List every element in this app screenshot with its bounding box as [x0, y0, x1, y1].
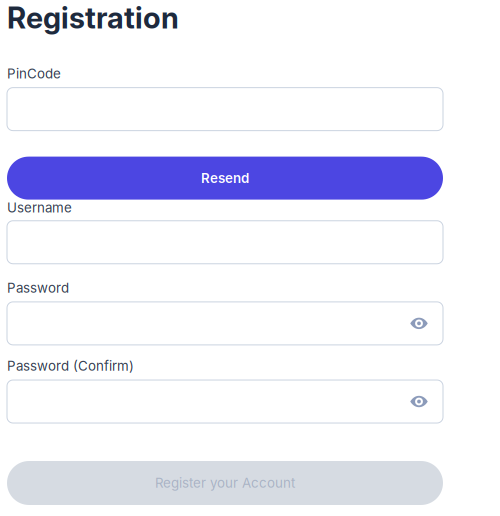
staticText: Username — [7, 200, 72, 216]
button[interactable]: Show Password (Confirm) — [395, 380, 443, 423]
staticText: PinCode — [7, 65, 61, 82]
button[interactable]: Register your Account — [7, 461, 443, 505]
staticText: Registration — [7, 0, 179, 35]
button[interactable]: Show Password — [395, 302, 443, 345]
button[interactable]: Resend — [7, 157, 443, 200]
staticText: Password — [7, 280, 69, 296]
button[interactable]: Password (Confirm) — [7, 380, 443, 423]
button[interactable]: Password — [7, 302, 443, 345]
button[interactable]: Username — [7, 221, 443, 264]
staticText: Resend — [201, 170, 249, 186]
staticText: Password (Confirm) — [7, 358, 134, 374]
button[interactable]: PinCode — [7, 88, 443, 131]
staticText: Register your Account — [155, 475, 295, 491]
